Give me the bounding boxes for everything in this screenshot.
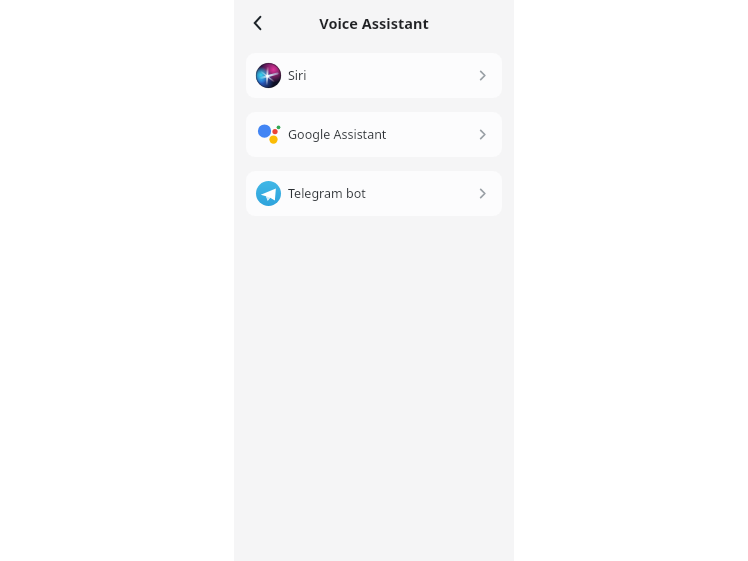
staticText: Voice Assistant [319, 13, 429, 33]
button[interactable]: Siri [246, 53, 502, 98]
staticText: Google Assistant [288, 126, 387, 143]
staticText: Siri [288, 67, 307, 84]
button[interactable]: Google Assistant [246, 112, 502, 157]
button[interactable]: Telegram bot [246, 171, 502, 216]
button[interactable]: Back [238, 3, 278, 43]
staticText: Telegram bot [288, 185, 366, 202]
